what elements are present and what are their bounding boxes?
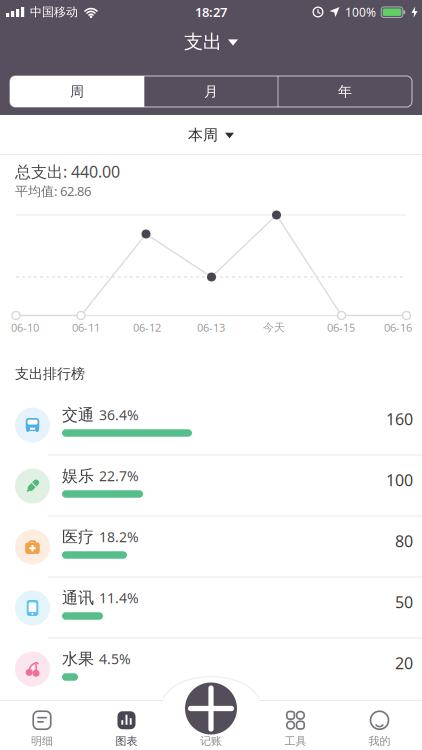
staticText: 总支出: 440.00 [15, 161, 120, 182]
staticText: 今天 [263, 321, 285, 334]
staticText: 娱乐 [62, 466, 94, 486]
staticText: 50 [395, 591, 413, 612]
staticText: 明细 [31, 734, 53, 748]
staticText: 160 [386, 408, 413, 429]
button[interactable]: 周 [10, 76, 144, 107]
staticText: 06-13 [197, 320, 225, 335]
button[interactable]: 交通 [0, 394, 422, 455]
staticText: 通讯 [62, 588, 94, 608]
staticText: 记账 [200, 734, 222, 748]
button[interactable]: 图表 [91, 706, 161, 750]
staticText: 11.4% [99, 589, 139, 607]
staticText: 06-10 [11, 320, 39, 335]
staticText: 我的 [368, 734, 390, 748]
staticText: 18:27 [195, 3, 227, 21]
button[interactable]: 医疗 [0, 516, 422, 577]
staticText: 80 [395, 530, 413, 551]
button[interactable]: 月 [144, 76, 278, 107]
staticText: 18.2% [99, 528, 139, 546]
button[interactable]: 支出 [184, 24, 238, 60]
staticText: 月 [204, 83, 218, 100]
staticText: 中国移动 [30, 5, 78, 19]
staticText: 平均值: 62.86 [15, 182, 91, 199]
staticText: 年 [338, 83, 352, 100]
button[interactable]: 工具 [260, 706, 330, 750]
staticText: 20 [395, 652, 413, 673]
staticText: 06-11 [72, 320, 100, 335]
staticText: 本周 [188, 126, 218, 144]
staticText: 100% [345, 4, 376, 20]
button[interactable]: 娱乐 [0, 455, 422, 516]
staticText: 06-15 [327, 320, 355, 335]
staticText: 水果 [62, 649, 94, 669]
button[interactable]: 我的 [344, 706, 414, 750]
button[interactable]: 明细 [7, 706, 77, 750]
button[interactable]: 记账 [185, 682, 237, 734]
staticText: 周 [70, 83, 84, 100]
staticText: 36.4% [99, 406, 139, 424]
staticText: 100 [386, 469, 413, 490]
button[interactable]: 通讯 [0, 577, 422, 638]
staticText: 图表 [115, 734, 137, 748]
staticText: 工具 [284, 734, 306, 748]
button[interactable]: 年 [278, 76, 412, 107]
staticText: 06-12 [133, 320, 161, 335]
staticText: 交通 [62, 405, 94, 425]
staticText: 4.5% [99, 650, 131, 668]
button[interactable]: 水果 [0, 638, 422, 699]
staticText: 06-16 [384, 320, 412, 335]
button[interactable]: 本周 [0, 115, 422, 155]
staticText: 22.7% [99, 467, 139, 485]
staticText: 支出排行榜 [15, 365, 85, 382]
staticText: 医疗 [62, 527, 94, 547]
staticText: 支出 [184, 30, 222, 54]
